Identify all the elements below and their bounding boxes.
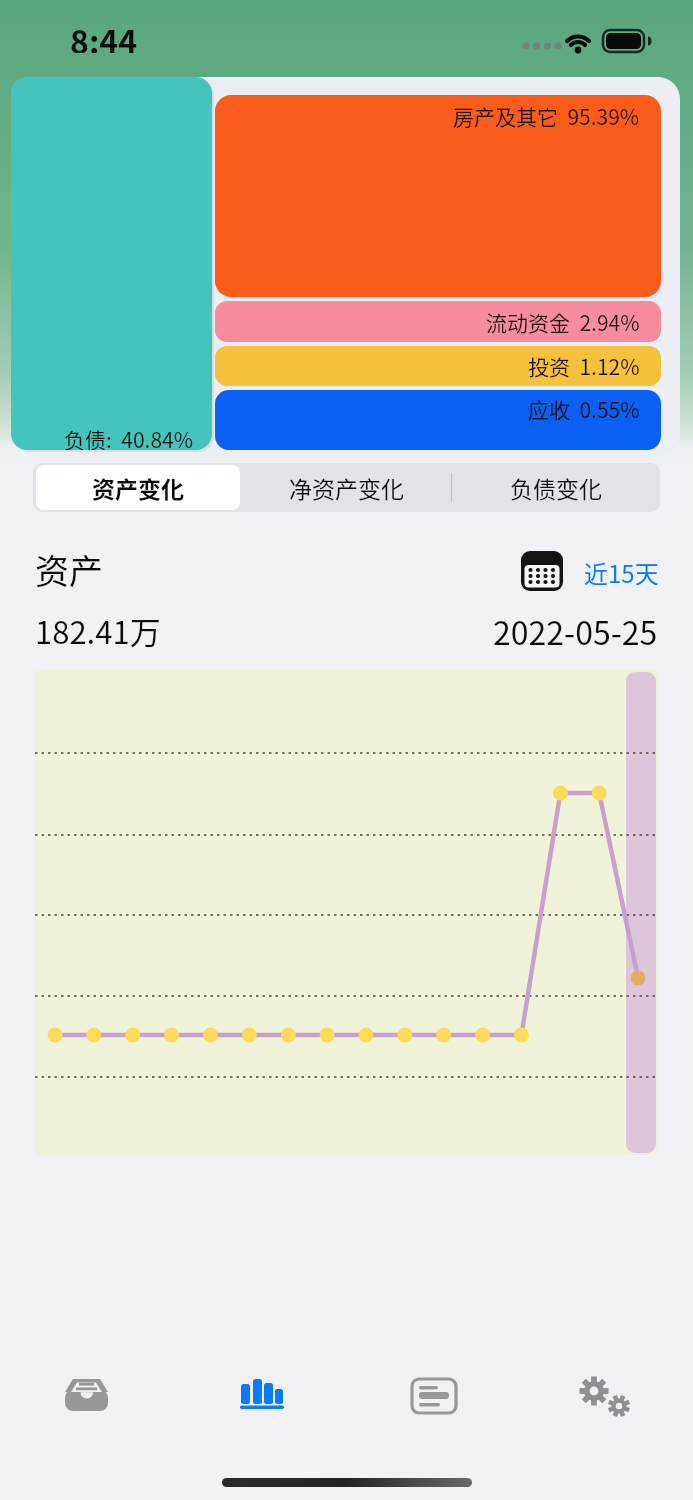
button[interactable] bbox=[451, 463, 660, 512]
button[interactable] bbox=[570, 1367, 638, 1423]
button[interactable] bbox=[57, 1367, 117, 1423]
staticText: 8:44 bbox=[70, 17, 138, 53]
button[interactable] bbox=[404, 1367, 464, 1423]
button[interactable] bbox=[215, 390, 661, 450]
button[interactable] bbox=[215, 301, 661, 342]
button[interactable] bbox=[11, 77, 212, 450]
staticText: 应收 0.55% bbox=[528, 394, 640, 424]
staticText: 负债: 40.84% bbox=[64, 424, 194, 450]
button[interactable] bbox=[215, 95, 661, 297]
staticText: 2022-05-25 bbox=[493, 608, 658, 648]
staticText: 近15天 bbox=[584, 555, 659, 585]
staticText: 资产 bbox=[35, 545, 103, 589]
staticText: 房产及其它 95.39% bbox=[453, 101, 640, 131]
staticText: 182.41万 bbox=[35, 608, 161, 648]
button[interactable] bbox=[36, 465, 240, 510]
staticText: 净资产变化 bbox=[289, 471, 404, 504]
button[interactable] bbox=[521, 551, 563, 591]
button[interactable] bbox=[242, 463, 451, 512]
staticText: 负债变化 bbox=[510, 471, 602, 504]
staticText: 资产变化 bbox=[92, 471, 184, 504]
staticText: 投资 1.12% bbox=[528, 351, 640, 381]
button[interactable] bbox=[232, 1367, 292, 1423]
button[interactable] bbox=[215, 346, 661, 386]
staticText: 流动资金 2.94% bbox=[486, 307, 640, 337]
